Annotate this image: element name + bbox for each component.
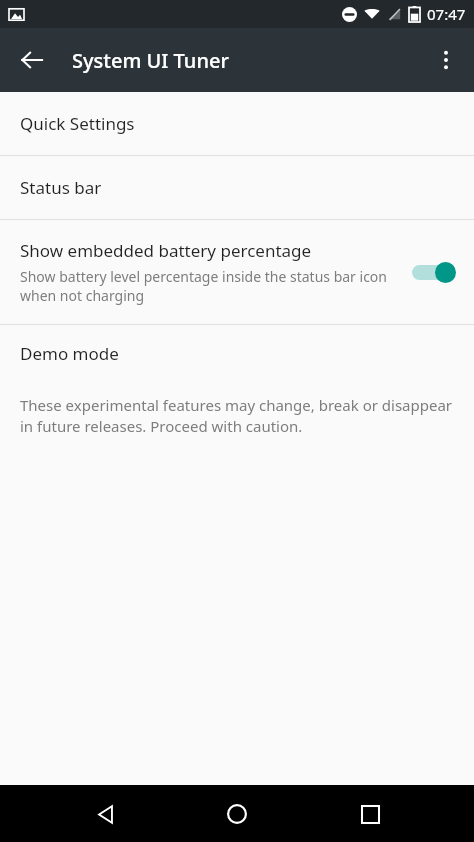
button[interactable]: Back: [77, 786, 133, 842]
button[interactable]: Back: [8, 36, 56, 84]
button[interactable]: Demo mode: [0, 325, 474, 382]
button[interactable]: Recent apps: [342, 786, 398, 842]
staticText: Status bar: [20, 176, 102, 199]
staticText: Quick Settings: [20, 112, 135, 135]
staticText: Show battery level percentage inside the…: [20, 267, 402, 305]
button[interactable]: Show embedded battery percentage toggle: [410, 258, 456, 286]
staticText: These experimental features may change, …: [20, 395, 456, 437]
button[interactable]: Status bar: [0, 156, 474, 219]
staticText: Demo mode: [20, 342, 119, 365]
button[interactable]: More options: [422, 36, 470, 84]
staticText: System UI Tuner: [72, 47, 229, 74]
button[interactable]: Home: [209, 786, 265, 842]
staticText: 07:47: [427, 4, 466, 24]
button[interactable]: Quick Settings: [0, 92, 474, 155]
staticText: Show embedded battery percentage: [20, 239, 312, 262]
button[interactable]: Show embedded battery percentage: [0, 220, 474, 324]
